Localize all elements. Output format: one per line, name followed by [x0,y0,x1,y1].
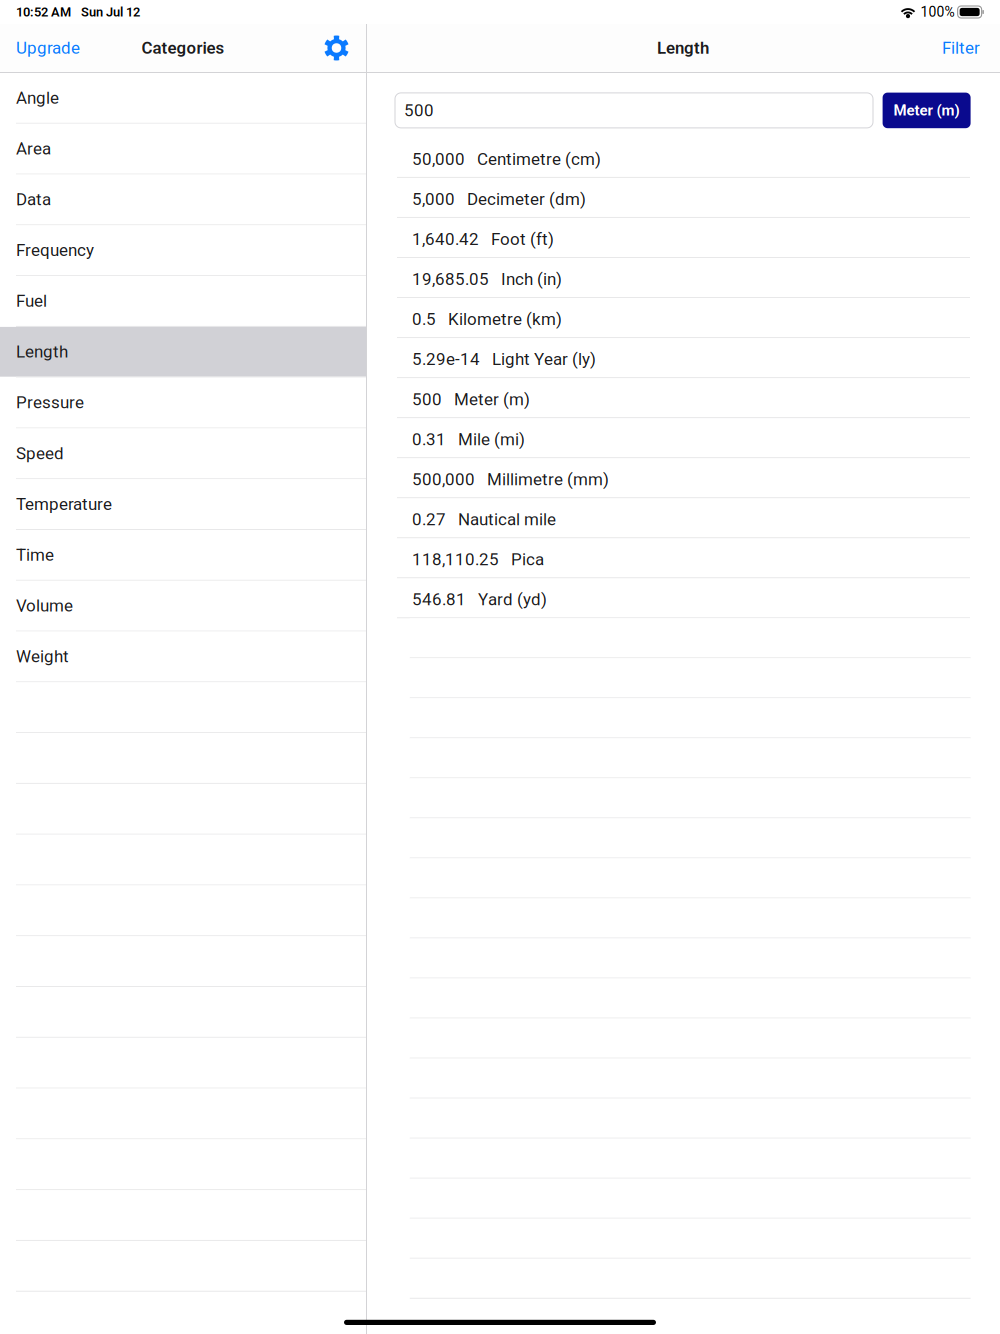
staticText: Fuel [16,291,47,311]
button[interactable]: Speed [0,428,366,479]
staticText: Mile (mi) [458,429,525,449]
staticText: Millimetre (mm) [487,469,609,489]
button[interactable]: Time [0,530,366,581]
button[interactable]: Area [0,124,366,175]
staticText: Sun Jul 12 [81,4,140,20]
button[interactable]: Frequency [0,225,366,276]
staticText: 118,110.25 [412,549,499,569]
button[interactable]: Weight [0,632,366,682]
staticText: Length [16,342,68,362]
button[interactable]: 1,640.42 [366,218,1000,258]
staticText: Centimetre (cm) [477,149,601,169]
staticText: 500,000 [412,469,475,489]
staticText: 546.81 [412,590,466,609]
button[interactable]: Settings [324,35,349,60]
button[interactable]: 5.29e-14 [366,338,1000,378]
staticText: 0.27 [412,509,446,529]
staticText: Volume [16,596,73,616]
button[interactable]: 500,000 [366,458,1000,498]
button[interactable]: Volume [0,581,366,632]
button[interactable]: 0.31 [366,418,1000,458]
button[interactable]: 500 [366,378,1000,418]
button[interactable]: 0.27 [366,498,1000,538]
button[interactable]: 118,110.25 [366,538,1000,578]
staticText: Upgrade [16,38,80,58]
staticText: Weight [16,646,69,666]
button[interactable]: 5,000 [366,178,1000,218]
staticText: Pica [511,549,544,569]
staticText: Frequency [16,240,94,260]
staticText: Data [16,189,51,209]
button[interactable]: 19,685.05 [366,258,1000,298]
staticText: 50,000 [412,149,465,169]
staticText: 500 [404,100,434,120]
staticText: Yard (yd) [478,590,547,609]
staticText: 5.29e-14 [412,349,480,369]
staticText: Angle [16,88,59,108]
staticText: Nautical mile [458,509,556,529]
staticText: Inch (in) [501,269,562,289]
button[interactable]: Pressure [0,378,366,428]
button[interactable]: Upgrade [16,38,80,58]
staticText: 10:52 AM [16,4,71,20]
staticText: Kilometre (km) [448,309,562,329]
staticText: Categories [141,38,224,58]
staticText: 0.5 [412,309,436,329]
staticText: 1,640.42 [412,229,479,249]
staticText: Speed [16,443,64,463]
button[interactable]: Meter (m) [883,93,971,128]
staticText: Decimeter (dm) [467,189,586,209]
button[interactable]: 546.81 [366,578,1000,618]
button[interactable]: Fuel [0,276,366,327]
staticText: 100% [920,4,954,20]
staticText: 5,000 [412,189,455,209]
staticText: Meter (m) [454,389,530,409]
button[interactable]: 0.5 [366,298,1000,338]
button[interactable]: Angle [0,73,366,124]
staticText: Time [16,545,54,565]
button[interactable]: Temperature [0,479,366,530]
staticText: Meter (m) [894,102,960,119]
staticText: Area [16,139,51,159]
staticText: 500 [412,389,442,409]
staticText: Filter [942,38,980,58]
button[interactable]: Filter [942,38,980,58]
staticText: Foot (ft) [491,229,554,249]
staticText: 19,685.05 [412,269,489,289]
button[interactable]: Length [0,327,366,378]
staticText: 0.31 [412,429,446,449]
staticText: Pressure [16,393,84,412]
button[interactable]: Data [0,175,366,225]
staticText: Length [657,38,709,58]
button[interactable]: 50,000 [366,138,1000,178]
staticText: Light Year (ly) [492,349,596,369]
staticText: Temperature [16,494,112,514]
